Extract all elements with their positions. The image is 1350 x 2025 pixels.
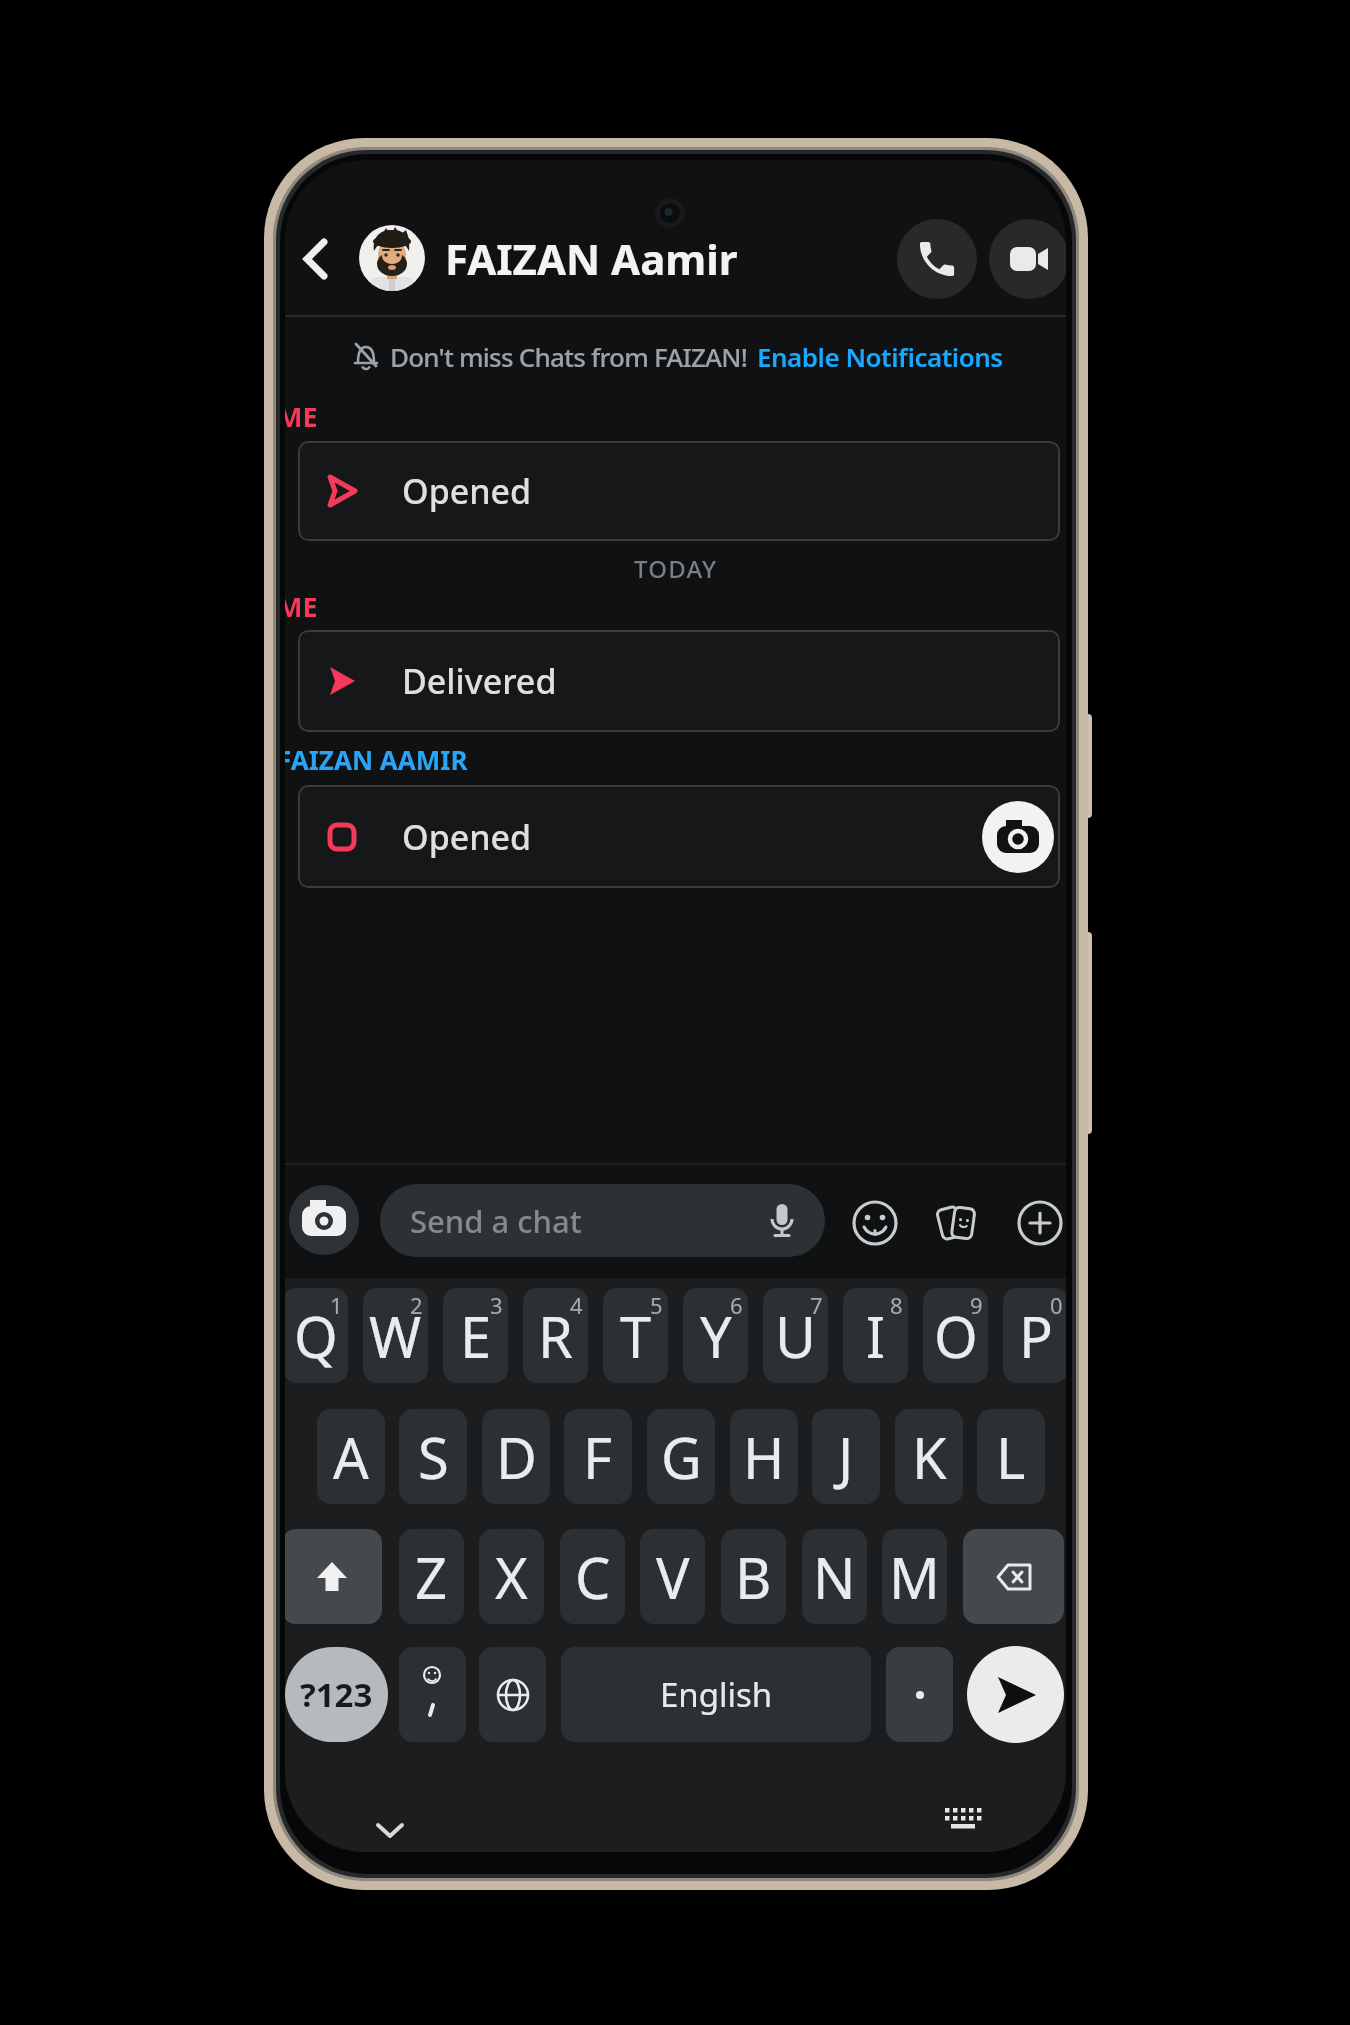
button[interactable]: ?123 [285, 1647, 388, 1742]
button[interactable]: O [923, 1288, 988, 1383]
staticText: ME [285, 398, 318, 435]
staticText: O [934, 1298, 978, 1374]
staticText: R [538, 1298, 573, 1374]
button[interactable] [989, 219, 1066, 299]
staticText: 3 [490, 1290, 503, 1320]
button[interactable] [851, 1199, 899, 1247]
button[interactable]: J [812, 1409, 880, 1504]
button[interactable] [963, 1529, 1064, 1624]
button[interactable]: C [560, 1529, 625, 1624]
button[interactable]: W [363, 1288, 428, 1383]
button[interactable]: Delivered [298, 630, 1060, 732]
staticText: Don't miss Chats from FAIZAN! [390, 339, 748, 374]
button[interactable] [982, 801, 1054, 873]
button[interactable]: V [640, 1529, 705, 1624]
button[interactable] [291, 235, 343, 283]
button[interactable] [289, 1185, 359, 1255]
staticText: 5 [650, 1290, 663, 1320]
button[interactable] [1016, 1199, 1064, 1247]
staticText: H [743, 1419, 785, 1495]
staticText: A [333, 1419, 369, 1495]
button[interactable] [886, 1647, 953, 1742]
staticText: C [575, 1539, 611, 1615]
staticText: Delivered [402, 658, 557, 704]
staticText: 7 [810, 1290, 823, 1320]
staticText: Z [415, 1539, 448, 1615]
staticText: 8 [890, 1290, 903, 1320]
button[interactable]: M [882, 1529, 947, 1624]
staticText: 9 [970, 1290, 983, 1320]
button[interactable] [285, 1529, 382, 1624]
button[interactable]: F [564, 1409, 632, 1504]
button[interactable]: B [721, 1529, 786, 1624]
button[interactable]: P [1003, 1288, 1066, 1383]
button[interactable]: X [479, 1529, 544, 1624]
staticText: L [996, 1419, 1026, 1495]
staticText: TODAY [634, 552, 718, 585]
staticText: G [661, 1419, 702, 1495]
staticText: P [1019, 1298, 1053, 1374]
button[interactable] [479, 1647, 546, 1742]
button[interactable]: Opened [298, 441, 1060, 541]
button[interactable]: English [561, 1647, 871, 1742]
button[interactable]: I [843, 1288, 908, 1383]
staticText: 4 [570, 1290, 583, 1320]
button[interactable]: Send a chat [380, 1184, 825, 1257]
staticText: 0 [1050, 1290, 1063, 1320]
button[interactable]: Z [399, 1529, 464, 1624]
button[interactable]: A [317, 1409, 385, 1504]
button[interactable]: N [802, 1529, 867, 1624]
staticText: E [460, 1298, 492, 1374]
button[interactable]: E [443, 1288, 508, 1383]
staticText: U [775, 1298, 816, 1374]
staticText: X [495, 1539, 528, 1615]
button[interactable]: R [523, 1288, 588, 1383]
staticText: Q [294, 1298, 338, 1374]
staticText: 1 [330, 1290, 343, 1320]
button[interactable]: Y [683, 1288, 748, 1383]
staticText: S [418, 1419, 449, 1495]
staticText: J [838, 1419, 854, 1495]
staticText: 6 [730, 1290, 743, 1320]
staticText: N [813, 1539, 856, 1615]
staticText: Send a chat [410, 1200, 582, 1242]
staticText: ?123 [300, 1672, 373, 1717]
staticText: 2 [410, 1290, 423, 1320]
button[interactable]: Opened [298, 785, 1060, 888]
staticText: I [866, 1298, 885, 1374]
staticText: FAIZAN AAMIR [285, 742, 468, 777]
button[interactable]: Q [285, 1288, 348, 1383]
staticText: V [656, 1539, 690, 1615]
button[interactable]: S [399, 1409, 467, 1504]
staticText: FAIZAN Aamir [445, 230, 738, 287]
staticText: B [735, 1539, 772, 1615]
button[interactable]: U [763, 1288, 828, 1383]
button[interactable] [932, 1198, 980, 1246]
staticText: T [620, 1298, 652, 1374]
button[interactable]: H [730, 1409, 798, 1504]
button[interactable]: D [482, 1409, 550, 1504]
button[interactable] [370, 1818, 410, 1846]
button[interactable] [967, 1646, 1064, 1743]
staticText: K [912, 1419, 947, 1495]
staticText: F [583, 1419, 613, 1495]
button[interactable] [941, 1806, 985, 1840]
staticText: Y [700, 1298, 732, 1374]
button[interactable]: K [895, 1409, 963, 1504]
staticText: W [369, 1298, 422, 1374]
button[interactable]: G [647, 1409, 715, 1504]
button[interactable] [897, 219, 977, 299]
staticText: ME [285, 588, 318, 625]
staticText: Opened [402, 468, 532, 514]
button[interactable]: Enable Notifications [757, 339, 1003, 374]
staticText: Opened [402, 814, 532, 860]
staticText: M [889, 1539, 940, 1615]
button[interactable]: L [977, 1409, 1045, 1504]
button[interactable] [399, 1647, 466, 1742]
staticText: Enable Notifications [757, 339, 1003, 374]
staticText: D [496, 1419, 537, 1495]
button[interactable] [359, 225, 425, 291]
button[interactable]: T [603, 1288, 668, 1383]
staticText: English [660, 1672, 773, 1717]
